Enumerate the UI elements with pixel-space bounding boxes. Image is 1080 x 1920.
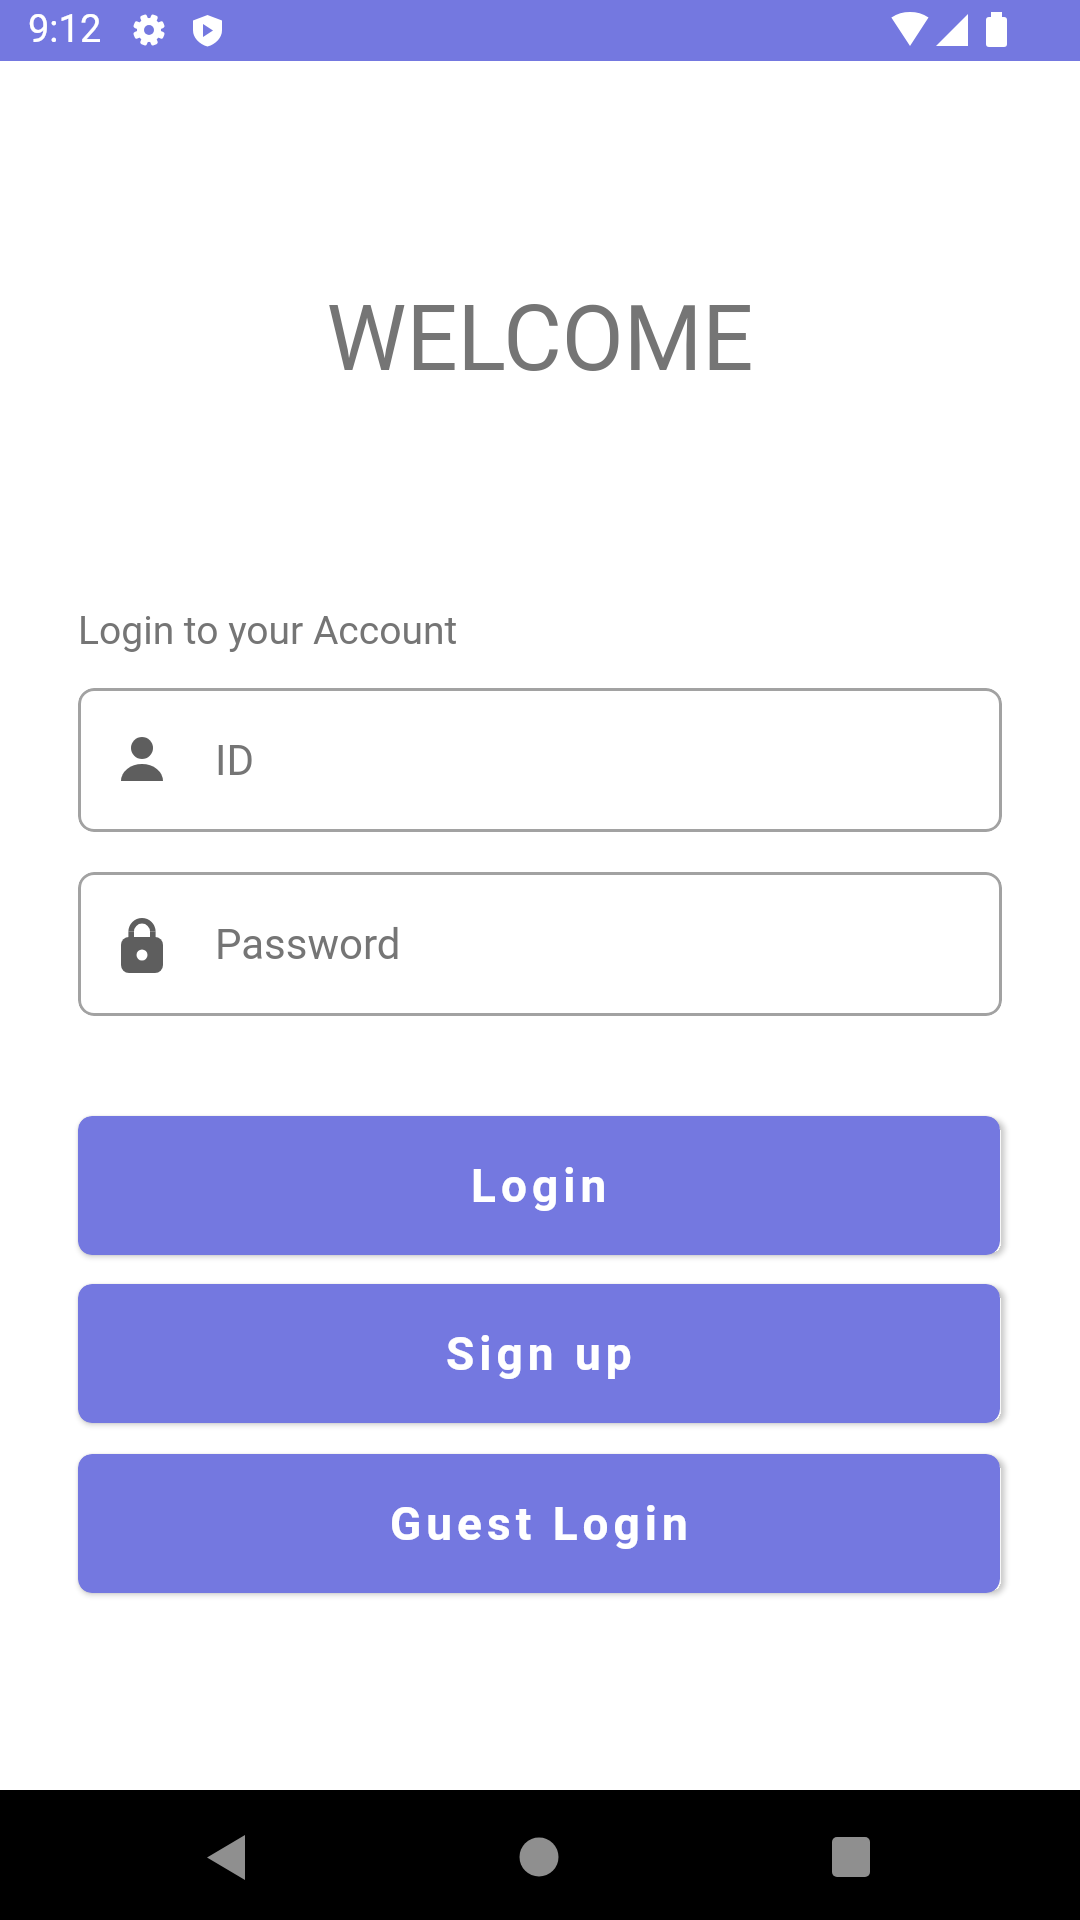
staticText: WELCOME bbox=[0, 287, 1080, 392]
button[interactable] bbox=[176, 1827, 276, 1887]
staticText: 9:12 bbox=[28, 7, 102, 52]
button[interactable]: Login bbox=[78, 1116, 1000, 1255]
staticText: Guest Login bbox=[390, 1497, 693, 1551]
button[interactable]: Password bbox=[78, 872, 1002, 1016]
button[interactable]: Guest Login bbox=[78, 1454, 1000, 1593]
staticText: ID bbox=[215, 736, 254, 785]
staticText: Login to your Account bbox=[78, 608, 458, 654]
staticText: Sign up bbox=[446, 1327, 637, 1381]
button[interactable]: Sign up bbox=[78, 1284, 1000, 1423]
button[interactable] bbox=[801, 1827, 901, 1887]
button[interactable] bbox=[489, 1827, 589, 1887]
staticText: Password bbox=[215, 920, 401, 969]
button[interactable]: ID bbox=[78, 688, 1002, 832]
staticText: Login bbox=[471, 1159, 612, 1213]
